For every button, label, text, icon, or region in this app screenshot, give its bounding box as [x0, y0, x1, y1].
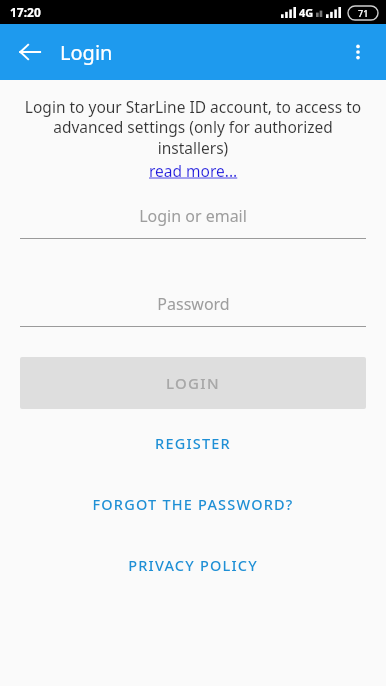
staticText: 4G	[299, 5, 314, 20]
button[interactable]: Back	[6, 28, 54, 76]
staticText: Login or email	[139, 205, 247, 227]
staticText: PRIVACY POLICY	[128, 555, 258, 575]
staticText: read more...	[149, 160, 238, 181]
staticText: REGISTER	[155, 433, 231, 453]
button[interactable]: read more...	[149, 160, 238, 181]
button[interactable]: More options	[334, 28, 382, 76]
button[interactable]: Password	[20, 291, 366, 327]
button[interactable]: PRIVACY POLICY	[0, 553, 386, 577]
staticText: FORGOT THE PASSWORD?	[92, 494, 294, 514]
button[interactable]: REGISTER	[0, 431, 386, 455]
staticText: Login to your StarLine ID account, to ac…	[16, 96, 370, 159]
staticText: Login	[60, 39, 113, 66]
staticText: LOGIN	[166, 373, 220, 393]
staticText: 17:20	[10, 4, 41, 20]
button[interactable]: FORGOT THE PASSWORD?	[0, 492, 386, 516]
staticText: Password	[157, 293, 230, 315]
staticText: 71	[358, 7, 369, 19]
button[interactable]: Login or email	[20, 203, 366, 239]
button[interactable]: LOGIN	[20, 357, 366, 409]
